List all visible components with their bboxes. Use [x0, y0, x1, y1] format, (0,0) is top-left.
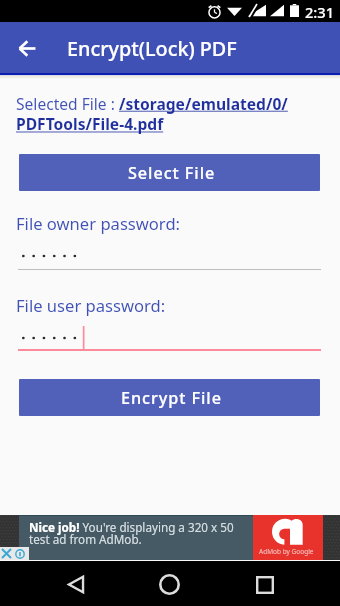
button[interactable]: Encrypt File — [19, 379, 320, 416]
staticText: Select File — [128, 162, 216, 184]
staticText: AdMob by Google — [259, 547, 314, 556]
button[interactable]: Back — [10, 31, 44, 65]
staticText: Nice job! You're displaying a 320 x 50 t… — [29, 519, 241, 548]
staticText: File user password: — [16, 294, 166, 317]
staticText: Selected File : /storage/emulated/0/PDFT… — [16, 93, 308, 135]
button[interactable]: Close ad — [2, 549, 11, 558]
button[interactable]: Ad info — [15, 549, 25, 559]
button[interactable]: Select File — [19, 154, 320, 191]
staticText: File owner password: — [16, 212, 181, 235]
button[interactable]: Back — [53, 562, 98, 606]
staticText: 2:31 — [305, 2, 335, 22]
button[interactable]: Home — [147, 562, 192, 606]
button[interactable]: Recents — [242, 562, 287, 606]
staticText: Encrypt(Lock) PDF — [67, 35, 237, 62]
staticText: Encrypt File — [121, 387, 222, 409]
